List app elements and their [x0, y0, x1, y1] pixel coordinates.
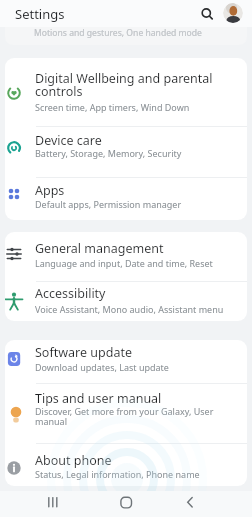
button[interactable] — [179, 492, 201, 514]
button[interactable] — [5, 340, 247, 383]
staticText: Software update — [35, 344, 132, 361]
staticText: Status, Legal information, Phone name — [35, 468, 200, 480]
staticText: About phone — [35, 452, 112, 469]
button[interactable] — [5, 384, 247, 442]
button[interactable] — [197, 3, 217, 23]
button[interactable] — [5, 178, 247, 220]
staticText: Battery, Storage, Memory, Security — [35, 147, 182, 159]
button[interactable] — [115, 492, 137, 514]
staticText: Voice Assistant, Mono audio, Assistant m… — [35, 303, 224, 315]
staticText: Apps — [35, 182, 65, 199]
button[interactable] — [5, 282, 247, 321]
button[interactable] — [223, 3, 243, 23]
button[interactable] — [5, 444, 247, 486]
staticText: Default apps, Permission manager — [35, 198, 182, 210]
staticText: General management — [35, 240, 164, 257]
staticText: Discover, Get more from your Galaxy, Use… — [35, 405, 214, 428]
button[interactable] — [5, 58, 247, 126]
staticText: Language and input, Date and time, Reset — [35, 257, 213, 269]
staticText: Accessibility — [35, 285, 106, 302]
staticText: Tips and user manual — [35, 390, 162, 407]
button[interactable] — [42, 492, 64, 514]
staticText: Digital Wellbeing and parental controls — [35, 70, 213, 99]
button[interactable] — [5, 127, 247, 178]
staticText: Device care — [35, 132, 102, 149]
staticText: Settings — [15, 5, 65, 23]
staticText: Download updates, Last update — [35, 361, 169, 373]
button[interactable] — [5, 232, 247, 281]
staticText: Motions and gestures, One handed mode — [34, 27, 202, 39]
staticText: Screen time, App timers, Wind Down — [35, 101, 190, 113]
